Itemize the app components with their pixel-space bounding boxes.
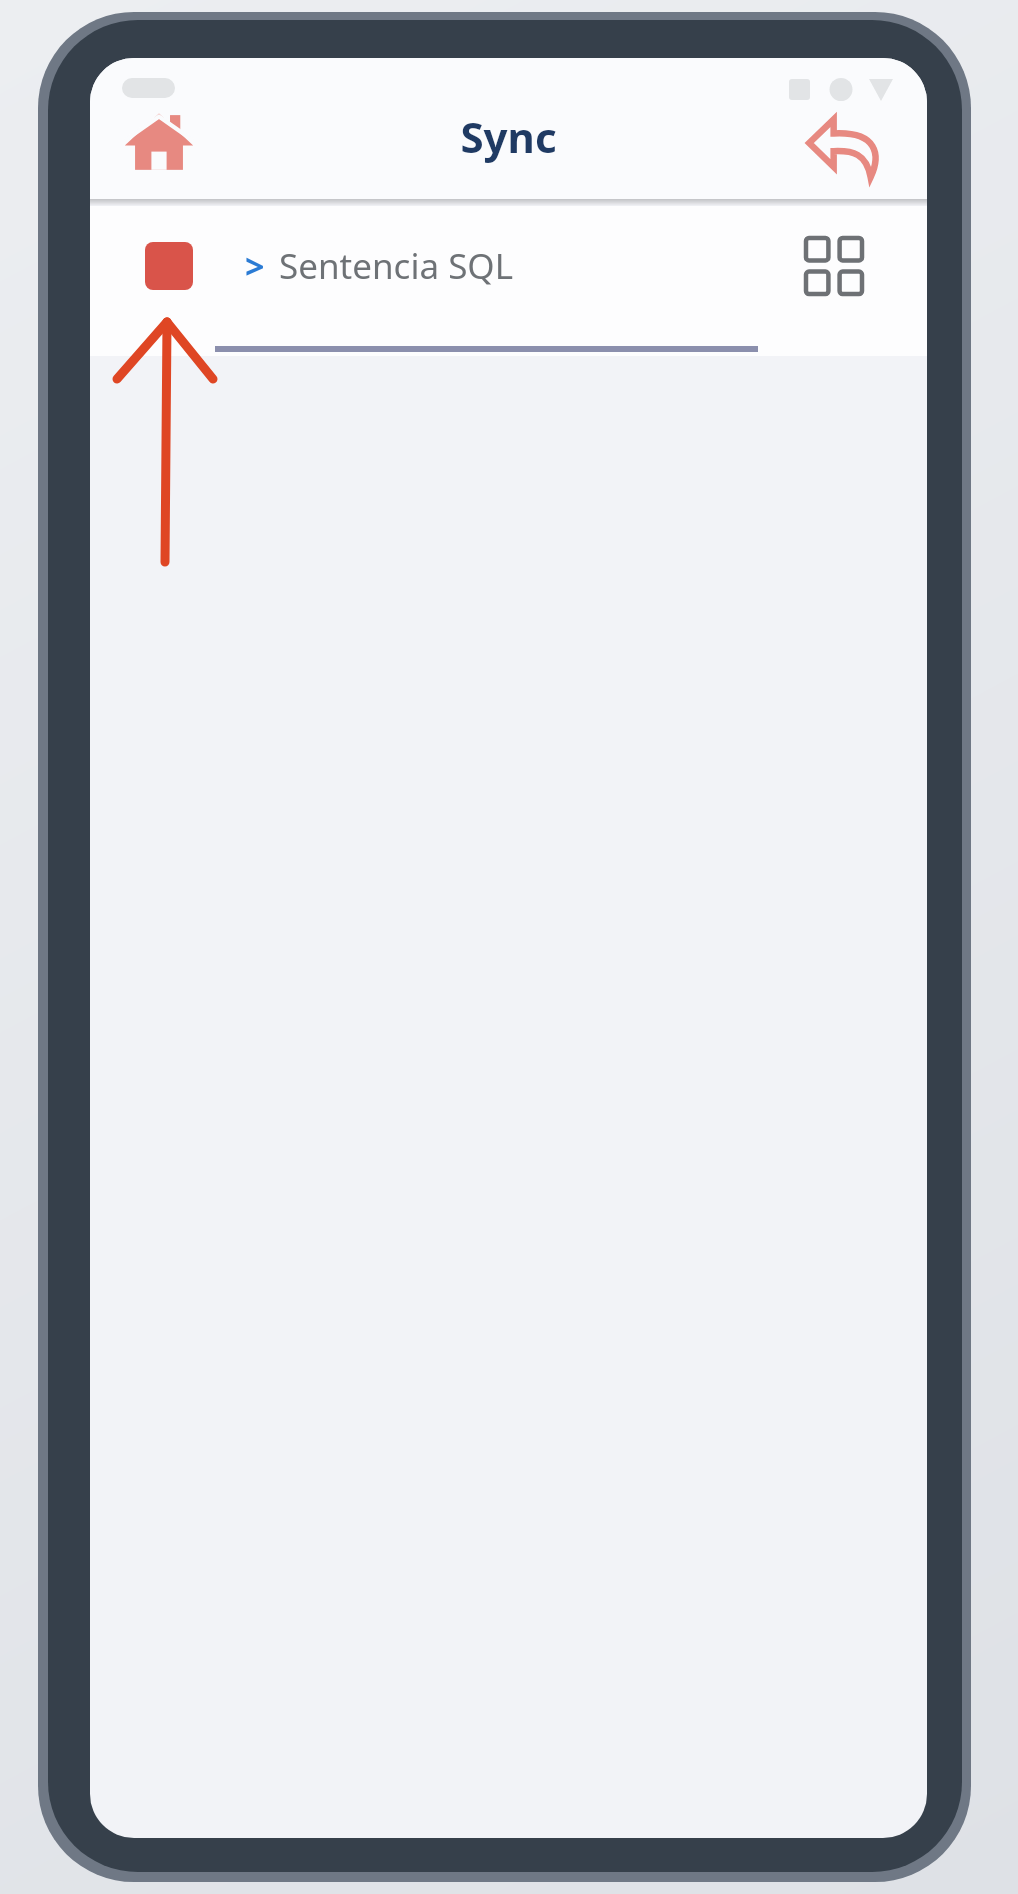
button[interactable]: > <box>90 206 927 326</box>
button[interactable]: Reply <box>800 102 888 190</box>
button[interactable]: Home <box>115 100 203 188</box>
staticText: Sentencia SQL <box>279 242 514 290</box>
staticText: Sync <box>460 108 557 165</box>
staticText: > <box>245 243 265 289</box>
button[interactable]: Grid view <box>790 222 878 310</box>
